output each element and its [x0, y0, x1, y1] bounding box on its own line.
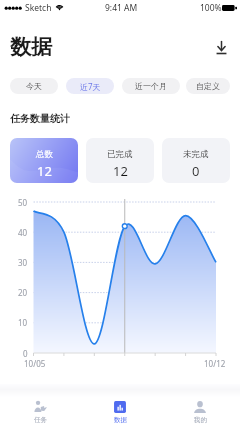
- staticText: 12: [37, 162, 52, 180]
- button[interactable]: 自定义: [186, 78, 230, 94]
- staticText: 12: [113, 162, 128, 180]
- staticText: 10/05: [24, 358, 46, 369]
- staticText: 已完成: [107, 149, 133, 160]
- staticText: 总数: [36, 149, 53, 160]
- staticText: 近一个月: [135, 81, 167, 91]
- staticText: 10: [18, 317, 28, 328]
- button[interactable]: 近一个月: [122, 78, 180, 94]
- staticText: 数据: [10, 34, 52, 60]
- staticText: 任务数量统计: [10, 112, 70, 125]
- staticText: 自定义: [196, 81, 220, 91]
- staticText: 0: [192, 162, 200, 180]
- button[interactable]: 数据: [80, 397, 160, 424]
- staticText: 近7天: [80, 81, 101, 92]
- staticText: Sketch: [25, 2, 52, 14]
- staticText: 9:41 AM: [105, 2, 138, 14]
- button[interactable]: Download: [211, 37, 231, 57]
- staticText: 100%: [200, 2, 222, 14]
- button[interactable]: 总数: [10, 138, 78, 183]
- button[interactable]: 任务: [0, 397, 80, 424]
- staticText: 50: [18, 197, 28, 208]
- staticText: 我的: [194, 416, 207, 424]
- button[interactable]: 我的: [160, 397, 240, 424]
- staticText: 40: [18, 227, 28, 238]
- staticText: 未完成: [183, 149, 209, 160]
- staticText: 任务: [34, 416, 47, 424]
- button[interactable]: 已完成: [86, 138, 154, 183]
- button[interactable]: 近7天: [66, 78, 114, 94]
- staticText: 数据: [114, 416, 127, 424]
- staticText: 20: [18, 287, 28, 298]
- staticText: 0: [23, 348, 28, 359]
- button[interactable]: 未完成: [162, 138, 230, 183]
- staticText: 今天: [26, 81, 42, 91]
- staticText: 30: [18, 257, 28, 268]
- staticText: 10/12: [204, 358, 226, 369]
- button[interactable]: 今天: [10, 78, 58, 94]
